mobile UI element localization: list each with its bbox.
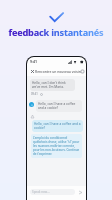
staticText: L'emploi du conditionnel québécois chose… [33, 136, 80, 156]
button[interactable]: More options [81, 68, 84, 74]
button[interactable]: L'emploi du conditionnel québécois chose… [31, 134, 82, 158]
staticText: 09:41 [31, 92, 38, 96]
button[interactable]: Close [29, 68, 35, 74]
button[interactable]: Send [77, 189, 83, 195]
button[interactable]: Assistant avatar [29, 102, 34, 107]
staticText: Rencontre un nouveau voisin [35, 69, 81, 73]
staticText: Hello, can I have a coffee and a cookie? [38, 102, 80, 110]
staticText: Hello, can I don't think we've met. I'm … [32, 81, 73, 89]
button[interactable]: Hello, can I don't think we've met. I'm … [30, 79, 75, 91]
staticText: 9:41 [30, 59, 37, 64]
staticText: feedback instantanés [0, 26, 112, 39]
button[interactable]: Speak now... [30, 189, 75, 195]
button[interactable]: Hello, can I have a coffee and a cookie? [36, 100, 82, 112]
button[interactable]: Hello, can I have a coffee and a cookie? [32, 120, 83, 132]
staticText: Hello, can I have a coffee and a cookie? [34, 122, 81, 130]
button[interactable]: Validated [49, 12, 64, 23]
staticText: Speak now... [32, 190, 50, 194]
